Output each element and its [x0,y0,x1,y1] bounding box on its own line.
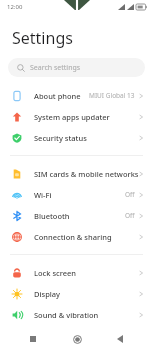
staticText: Search settings [30,63,81,73]
staticText: Off [125,211,135,220]
staticText: Bluetooth [34,211,70,221]
button[interactable]: Home [66,328,88,350]
button[interactable]: Back [109,328,131,350]
button[interactable]: Security status [0,127,153,148]
button[interactable]: About phone [0,85,153,106]
staticText: SIM cards & mobile networks [34,169,139,179]
button[interactable]: Lock screen [0,262,153,283]
staticText: Connection & sharing [34,232,112,242]
staticText: Security status [34,133,87,143]
staticText: About phone [34,91,81,101]
button[interactable]: Wi-Fi [0,184,153,205]
staticText: Off [125,190,135,199]
staticText: Settings [12,27,73,49]
button[interactable]: Recents [22,328,44,350]
staticText: MIUI Global 13 [89,91,135,100]
button[interactable]: Bluetooth [0,205,153,226]
button[interactable]: Display [0,283,153,304]
button[interactable]: SIM cards & mobile networks [0,163,153,184]
staticText: Display [34,289,61,299]
staticText: 12:00 [7,3,23,11]
staticText: System apps updater [34,112,110,122]
button[interactable]: Connection & sharing [0,226,153,247]
button[interactable]: Sound & vibration [0,304,153,325]
button[interactable]: System apps updater [0,106,153,127]
staticText: Wi-Fi [34,190,52,200]
staticText: Sound & vibration [34,310,99,320]
staticText: Lock screen [34,268,77,278]
button[interactable]: Search settings [8,58,145,77]
